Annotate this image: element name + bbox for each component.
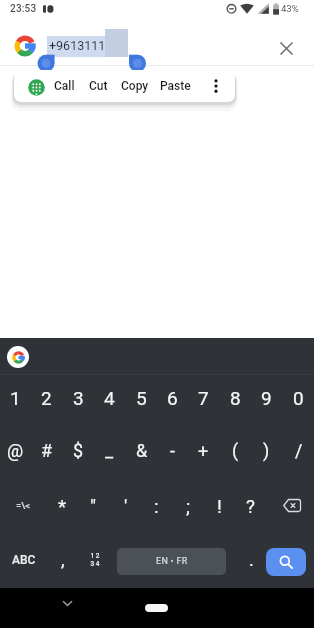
staticText: ' bbox=[124, 495, 128, 517]
staticText: 1 2 3 4 bbox=[90, 552, 100, 568]
staticText: 0 bbox=[293, 387, 304, 409]
button[interactable] bbox=[206, 74, 226, 98]
button[interactable]: 8 bbox=[220, 371, 251, 424]
button[interactable]: . bbox=[236, 533, 267, 586]
button[interactable] bbox=[26, 77, 46, 97]
button[interactable]: ! bbox=[204, 479, 235, 532]
staticText: 43% bbox=[281, 3, 299, 14]
staticText: _ bbox=[105, 440, 114, 461]
staticText: . bbox=[249, 549, 254, 570]
button[interactable]: =\< bbox=[0, 479, 47, 532]
button[interactable]: 1 2 3 4 bbox=[79, 533, 110, 586]
button[interactable]: & bbox=[126, 424, 157, 477]
button[interactable] bbox=[272, 34, 300, 62]
staticText: Copy bbox=[121, 79, 149, 93]
button[interactable]: ABC bbox=[0, 533, 47, 586]
button[interactable] bbox=[7, 346, 29, 368]
staticText: 6 bbox=[167, 387, 178, 409]
staticText: ! bbox=[217, 495, 222, 517]
button[interactable]: EN • FR bbox=[117, 548, 226, 575]
button[interactable]: 1 bbox=[0, 371, 31, 424]
staticText: & bbox=[136, 440, 148, 461]
button[interactable]: # bbox=[31, 424, 62, 477]
button[interactable]: Paste bbox=[158, 74, 193, 98]
button[interactable] bbox=[266, 548, 306, 576]
staticText: : bbox=[154, 495, 159, 517]
staticText: $ bbox=[73, 440, 84, 461]
staticText: Call bbox=[54, 79, 75, 93]
button[interactable]: - bbox=[157, 424, 188, 477]
button[interactable] bbox=[145, 604, 168, 612]
button[interactable]: Call bbox=[49, 74, 79, 98]
staticText: EN • FR bbox=[156, 556, 188, 567]
button[interactable] bbox=[55, 594, 79, 612]
button[interactable]: 4 bbox=[94, 371, 125, 424]
button[interactable]: 3 bbox=[63, 371, 94, 424]
staticText: * bbox=[58, 495, 67, 517]
button[interactable] bbox=[14, 35, 36, 57]
staticText: ; bbox=[186, 495, 191, 517]
staticText: ( bbox=[232, 440, 239, 461]
button[interactable]: + bbox=[188, 424, 219, 477]
staticText: 8 bbox=[230, 387, 241, 409]
button[interactable]: 9 bbox=[251, 371, 282, 424]
staticText: 23:53 bbox=[10, 3, 37, 15]
button[interactable]: ( bbox=[220, 424, 251, 477]
staticText: 5 bbox=[136, 387, 147, 409]
staticText: Paste bbox=[160, 79, 191, 93]
staticText: 9 bbox=[261, 387, 272, 409]
button[interactable]: Cut bbox=[84, 74, 112, 98]
button[interactable]: ' bbox=[110, 479, 141, 532]
staticText: +9613111 bbox=[49, 38, 106, 53]
button[interactable]: " bbox=[78, 479, 109, 532]
button[interactable]: Copy bbox=[119, 74, 150, 98]
staticText: @ bbox=[7, 440, 24, 461]
button[interactable]: : bbox=[141, 479, 172, 532]
staticText: Cut bbox=[89, 79, 108, 93]
button[interactable]: ; bbox=[173, 479, 204, 532]
button[interactable]: ? bbox=[235, 479, 266, 532]
staticText: 1 bbox=[10, 387, 21, 409]
staticText: =\< bbox=[16, 500, 31, 511]
button[interactable]: @ bbox=[0, 424, 31, 477]
staticText: + bbox=[198, 440, 209, 461]
staticText: , bbox=[61, 549, 65, 570]
button[interactable]: $ bbox=[63, 424, 94, 477]
staticText: - bbox=[170, 440, 175, 461]
staticText: ABC bbox=[12, 553, 36, 567]
staticText: 7 bbox=[198, 387, 209, 409]
staticText: ? bbox=[246, 495, 255, 517]
button[interactable]: 2 bbox=[31, 371, 62, 424]
staticText: 3 bbox=[73, 387, 84, 409]
button[interactable]: , bbox=[47, 533, 78, 586]
button[interactable]: / bbox=[283, 424, 314, 477]
button[interactable]: * bbox=[47, 479, 78, 532]
staticText: ) bbox=[263, 440, 270, 461]
button[interactable]: 7 bbox=[188, 371, 219, 424]
staticText: 4 bbox=[104, 387, 115, 409]
staticText: 2 bbox=[41, 387, 52, 409]
staticText: # bbox=[41, 440, 53, 461]
staticText: / bbox=[295, 440, 303, 461]
button[interactable]: ) bbox=[251, 424, 282, 477]
button[interactable]: _ bbox=[94, 424, 125, 477]
button[interactable]: 0 bbox=[283, 371, 314, 424]
button[interactable]: 5 bbox=[126, 371, 157, 424]
button[interactable] bbox=[268, 479, 314, 532]
button[interactable]: 6 bbox=[157, 371, 188, 424]
staticText: " bbox=[90, 495, 97, 517]
